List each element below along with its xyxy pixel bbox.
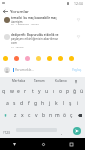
staticText: p [66,88,70,95]
staticText: temsilci bu maç kazanabilir maç [11,16,57,20]
staticText: Yorum ekle... [15,68,71,72]
button[interactable]: v [33,109,40,121]
button[interactable]: u [43,85,50,97]
button[interactable]: j [46,97,53,109]
button[interactable]: s [11,97,18,109]
button[interactable]: Recent apps [57,138,85,150]
staticText: r [24,88,27,95]
button[interactable]: Emoji [25,56,30,61]
button[interactable]: i [74,97,81,109]
staticText: ç [70,112,73,119]
staticText: c [28,112,31,119]
button[interactable]: Back [0,138,29,150]
button[interactable]: g [32,97,39,109]
button[interactable]: c [26,109,33,121]
staticText: f [28,100,30,107]
staticText: b [42,112,46,119]
button[interactable]: e [15,85,22,97]
button[interactable]: Send [73,127,81,135]
staticText: s [13,100,16,107]
button[interactable]: ö [61,109,68,121]
staticText: Paylaş [72,68,82,72]
staticText: ı [53,88,55,95]
staticText: n [49,112,53,119]
button[interactable]: ?123 [1,124,12,142]
button[interactable]: Emoji [58,56,63,61]
button[interactable]: a [4,97,11,109]
staticText: k [55,100,58,107]
button[interactable]: Back [1,7,9,15]
staticText: x [21,112,24,119]
button[interactable]: q [0,85,8,97]
staticText: g [34,100,38,107]
button[interactable]: dedipertfc Başvuruldu etkinlik ve [0,33,85,50]
staticText: . [61,130,63,137]
button[interactable]: Emoji [3,56,8,61]
staticText: z [14,112,17,119]
staticText: h [41,100,45,107]
staticText: dedipertfc Başvuruldu etkinlik ve [11,33,59,37]
staticText: Yorumlar [10,8,29,14]
button[interactable]: Emoji [36,56,41,61]
staticText: ş [69,100,72,107]
button[interactable]: temsilci bu maç kazanabilir maç [0,16,85,27]
staticText: Tamam [34,79,45,83]
staticText: a [6,100,9,107]
button[interactable]: . [58,124,66,142]
staticText: Kullanıcı [55,79,68,83]
button[interactable]: Voice input [72,77,80,85]
staticText: Merhaba [12,79,26,83]
button[interactable]: Shift [0,109,11,121]
button[interactable]: w [8,85,15,97]
button[interactable]: Tamam [28,77,50,85]
button[interactable]: Like [76,34,81,39]
button[interactable]: n [47,109,54,121]
button[interactable]: ç [68,109,75,121]
button[interactable]: l [60,97,67,109]
button[interactable]: ü [78,85,85,97]
staticText: y [38,88,41,95]
staticText: v [35,112,38,119]
button[interactable]: h [39,97,46,109]
staticText: l [63,100,65,107]
button[interactable]: ı [50,85,57,97]
staticText: üzerişim [11,20,23,24]
button[interactable]: Emoji [47,56,52,61]
staticText: q [2,88,6,95]
button[interactable]: ğ [71,85,78,97]
button[interactable]: x [19,109,26,121]
button[interactable]: o [57,85,64,97]
staticText: j [49,100,51,107]
staticText: com [11,41,17,45]
staticText: t [32,88,34,95]
button[interactable]: Backspace [75,109,85,121]
button[interactable]: Emoji [69,56,74,61]
button[interactable]: Merhaba [8,77,30,85]
button[interactable]: m [54,109,61,121]
button[interactable]: p [64,85,71,97]
staticText: i [77,100,79,107]
button[interactable]: Like [76,17,81,22]
button[interactable]: Paylaş [71,68,83,72]
button[interactable]: d [18,97,25,109]
staticText: 1s Yanıtla [11,45,24,48]
staticText: ?123 [3,131,10,135]
staticText: paylaşımı etkinliğimizin abartılmaz [11,37,58,41]
button[interactable]: k [53,97,60,109]
button[interactable]: Home [29,138,57,150]
button[interactable]: t [29,85,36,97]
button[interactable]: r [22,85,29,97]
button[interactable]: ş [67,97,74,109]
staticText: o [59,88,63,95]
button[interactable]: f [25,97,32,109]
button[interactable]: y [36,85,43,97]
staticText: ü [80,88,84,95]
button[interactable]: b [40,109,47,121]
button[interactable]: Kullanıcı [50,77,72,85]
button[interactable]: Emoji [14,56,19,61]
button[interactable]: z [11,109,19,121]
staticText: ğ [73,88,77,95]
staticText: u [45,88,49,95]
staticText: 12:34 [74,1,83,6]
